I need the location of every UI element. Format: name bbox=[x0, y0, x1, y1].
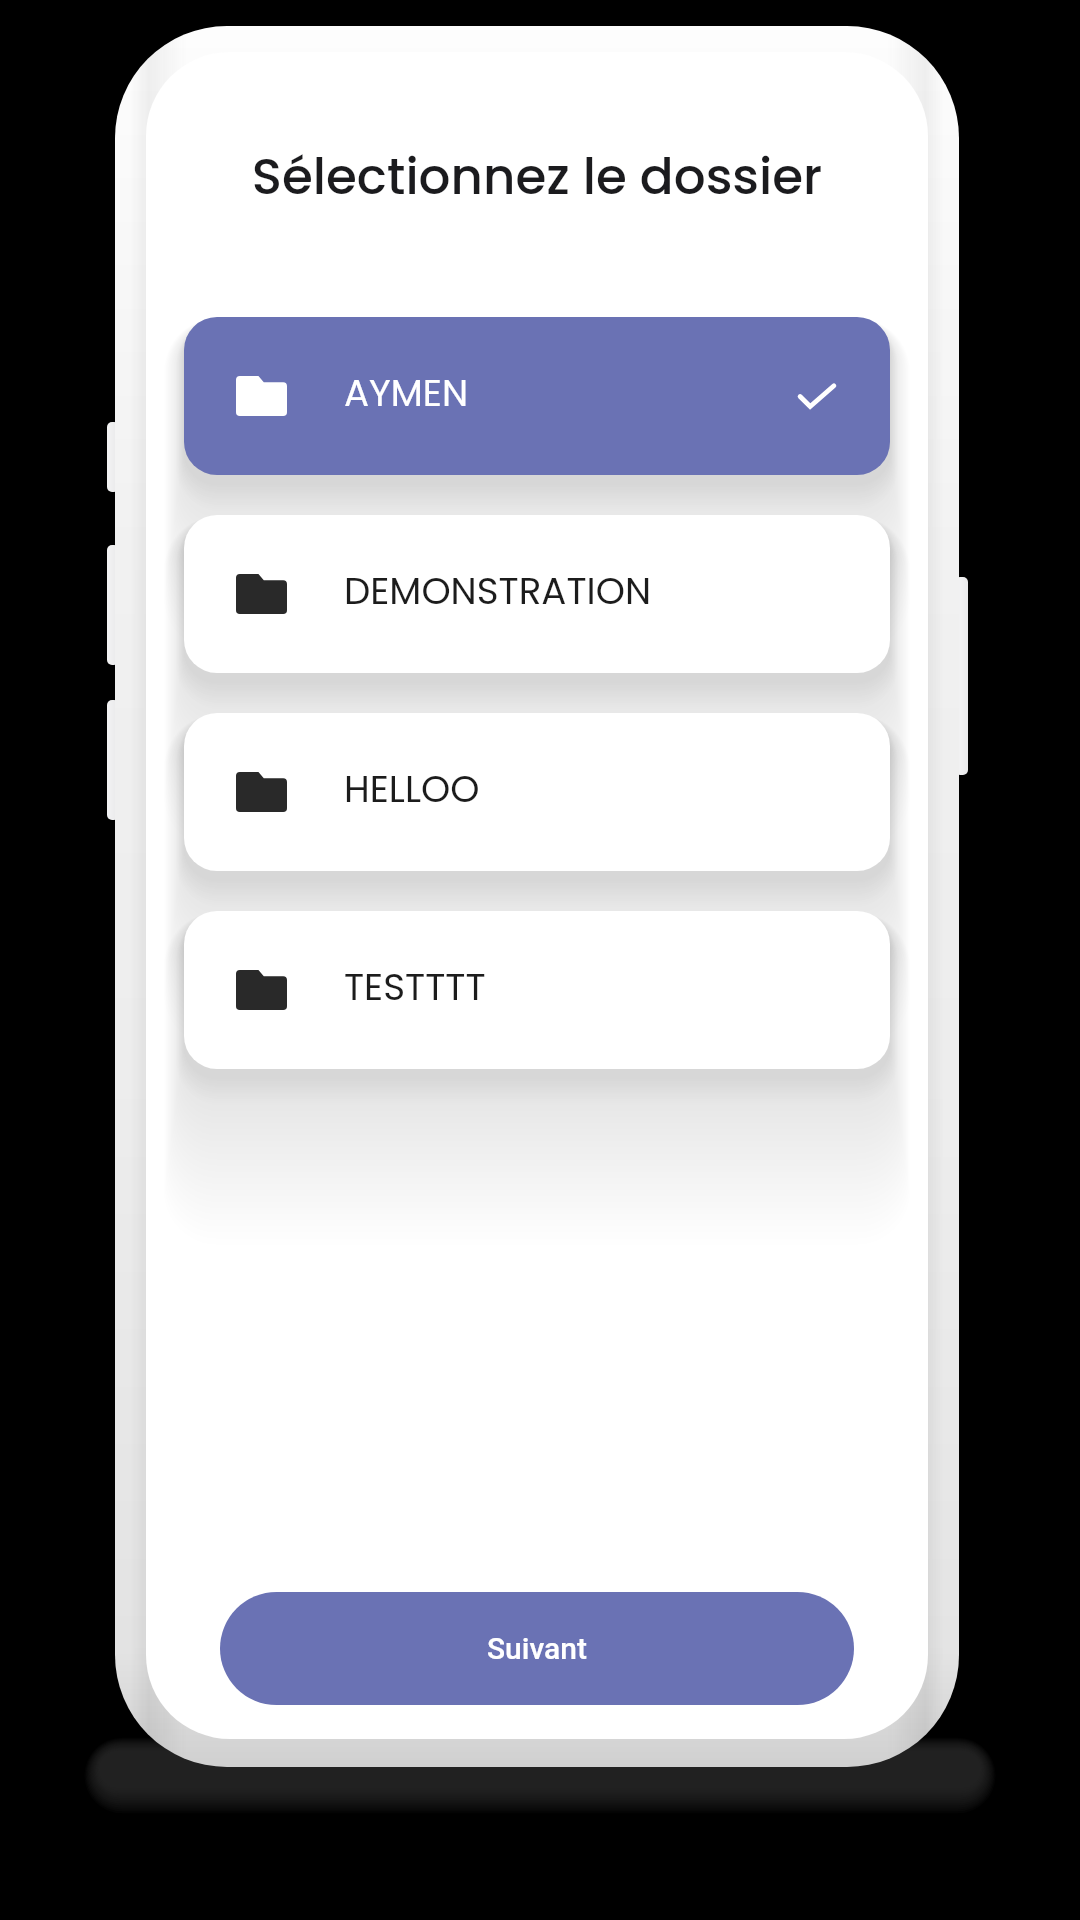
staticText: TESTTTT bbox=[344, 961, 486, 1013]
staticText: Suivant bbox=[487, 1631, 588, 1666]
button[interactable]: AYMEN bbox=[184, 317, 890, 475]
staticText: Sélectionnez le dossier bbox=[146, 142, 928, 212]
button[interactable]: Suivant bbox=[220, 1592, 854, 1705]
staticText: HELLOO bbox=[344, 763, 480, 815]
button[interactable]: DEMONSTRATION bbox=[184, 515, 890, 673]
staticText: DEMONSTRATION bbox=[344, 565, 652, 617]
other: Selected bbox=[798, 384, 836, 409]
button[interactable]: TESTTTT bbox=[184, 911, 890, 1069]
staticText: AYMEN bbox=[344, 367, 469, 419]
button[interactable]: HELLOO bbox=[184, 713, 890, 871]
